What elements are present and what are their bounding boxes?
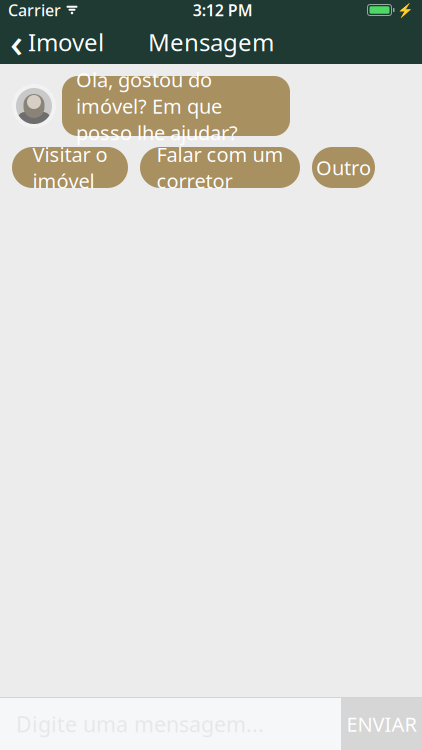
staticText: Mensagem	[148, 26, 274, 58]
button[interactable]: Visitar o imóvel	[12, 147, 128, 188]
button[interactable]: Digite uma mensagem...	[0, 698, 341, 750]
staticText: Imovel	[28, 26, 104, 58]
staticText: ⚡	[397, 2, 414, 18]
button[interactable]: Falar com um corretor	[140, 147, 300, 188]
staticText: Digite uma mensagem...	[16, 710, 264, 738]
staticText: 3:12 PM	[193, 0, 253, 21]
staticText: Falar com um corretor	[156, 141, 283, 194]
button[interactable]: Outro	[312, 147, 375, 188]
staticText: Outro	[316, 154, 371, 181]
staticText: Visitar o imóvel	[32, 141, 107, 194]
staticText: Carrier	[8, 0, 61, 21]
staticText: ENVIAR	[346, 711, 416, 737]
button[interactable]: ‹	[0, 20, 114, 64]
button[interactable]: ENVIAR	[341, 698, 422, 750]
staticText: ‹	[10, 15, 23, 68]
staticText: Ola, gostou do imóvel? Em que posso lhe …	[76, 66, 238, 146]
